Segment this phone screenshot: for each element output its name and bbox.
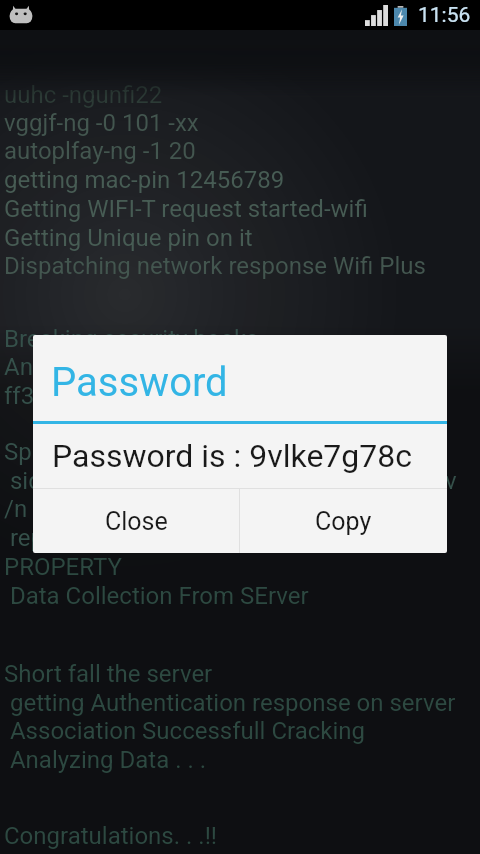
staticText: Password [51,359,228,406]
staticText: autoplfay-ng -1 20 [4,137,196,165]
staticText: PROPERTY [4,553,122,581]
staticText: Dispatching network response Wifi Plus [4,252,426,280]
staticText: Data Collection From SErver [4,582,309,610]
button[interactable]: Copy [240,489,447,553]
staticText: Association Successfull Cracking [4,717,366,745]
staticText: Copy [315,507,372,536]
staticText: Sp reading on [4,438,151,466]
staticText: Analyzing Data . . . [4,746,207,774]
staticText: Password is : 9vlke7g78c [52,437,413,475]
staticText: /n server node [4,495,159,523]
staticText: Analyzing the security [4,353,238,381]
button[interactable]: Close [33,489,239,553]
staticText: Breaking security hooks [4,325,259,353]
staticText: getting Authentication response on serve… [4,689,456,717]
staticText: getting mac-pin 12456789 [4,166,285,194]
other: Notification [8,2,34,28]
staticText: ff3d2fhs9sk2 [4,382,147,410]
staticText: uuhc -ngunfi22 [4,81,163,109]
staticText: vggjf-ng -0 101 -xx [4,109,199,137]
staticText: Getting WIFI-T request started-wifi [4,195,368,223]
staticText: Short fall the server [4,660,213,688]
staticText: Getting Unique pin on it [4,224,253,252]
staticText: sid network response key recieved on wav [4,467,457,495]
staticText: Close [105,507,168,536]
staticText: Congratulations. . .!! [4,822,218,850]
staticText: replying on [4,524,127,552]
staticText: 11:56 [418,3,471,28]
